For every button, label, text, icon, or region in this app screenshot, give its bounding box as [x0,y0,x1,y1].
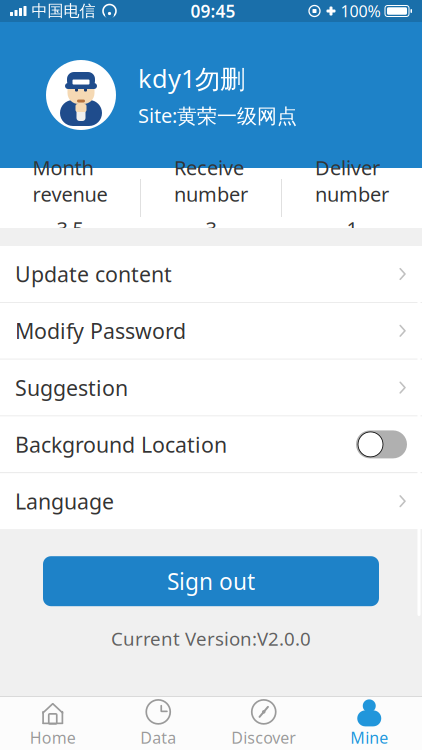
button[interactable]: Modify Password [0,303,422,359]
staticText: Update content [15,260,172,288]
staticText: Data [140,727,176,748]
staticText: 1 [346,215,357,242]
staticText: Month revenue [32,154,107,207]
staticText: 中国电信 [31,1,95,21]
staticText: 100% [340,0,380,22]
staticText: Discover [231,727,296,748]
staticText: Site:黄荣一级网点 [138,102,297,129]
staticText: Current Version:V2.0.0 [111,626,311,651]
button[interactable]: Suggestion [0,360,422,416]
staticText: 09:45 [190,0,235,22]
button[interactable]: Background Location [0,416,422,472]
staticText: Deliver number [315,154,389,207]
staticText: Mine [350,727,388,748]
staticText: 3.5 [56,215,83,242]
button[interactable]: Home [0,699,105,748]
staticText: 3 [205,215,216,242]
staticText: kdy1勿删 [138,61,245,95]
button[interactable]: Update content [0,246,422,302]
button[interactable]: Sign out [43,556,379,606]
staticText: Background Location [15,430,227,458]
staticText: Receive number [174,154,248,207]
button[interactable]: Mine [316,699,422,748]
staticText: Language [15,487,114,515]
button[interactable]: Language [0,473,422,529]
button[interactable]: Discover [211,699,316,748]
staticText: Modify Password [15,317,186,345]
staticText: Suggestion [15,373,128,402]
button[interactable]: Data [105,699,211,748]
staticText: Sign out [167,566,255,596]
staticText: Home [30,727,76,748]
